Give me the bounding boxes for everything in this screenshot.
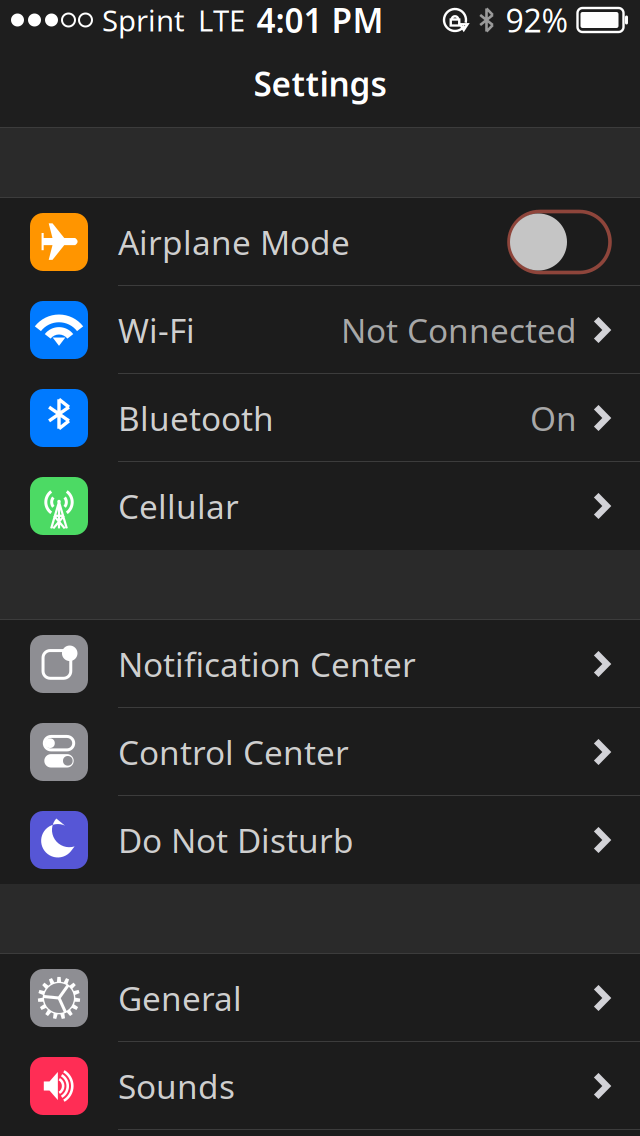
staticText: General	[118, 976, 242, 1020]
staticText: On	[530, 396, 577, 440]
button[interactable]: Notification Center	[0, 620, 640, 708]
button[interactable]: Sounds	[0, 1042, 640, 1130]
button[interactable]: Do Not Disturb	[0, 796, 640, 884]
button[interactable]: Control Center	[0, 708, 640, 796]
button[interactable]: Cellular	[0, 462, 640, 550]
staticText: LTE	[198, 0, 245, 39]
staticText: Bluetooth	[118, 396, 274, 440]
staticText: 4:01 PM	[256, 0, 383, 42]
staticText: Sprint	[102, 0, 185, 39]
staticText: 92%	[505, 0, 568, 41]
staticText: Airplane Mode	[118, 220, 350, 264]
button[interactable]: Airplane Mode	[0, 198, 640, 286]
staticText: Sounds	[118, 1064, 235, 1108]
staticText: Settings	[253, 61, 386, 106]
button[interactable]: Bluetooth	[0, 374, 640, 462]
staticText: Control Center	[118, 730, 349, 774]
button[interactable]: General	[0, 954, 640, 1042]
button[interactable]: Wi-Fi	[0, 286, 640, 374]
staticText: Wi-Fi	[118, 308, 195, 352]
staticText: Notification Center	[118, 642, 416, 686]
staticText: Cellular	[118, 484, 239, 528]
staticText: Do Not Disturb	[118, 818, 354, 862]
staticText: Not Connected	[341, 308, 577, 352]
